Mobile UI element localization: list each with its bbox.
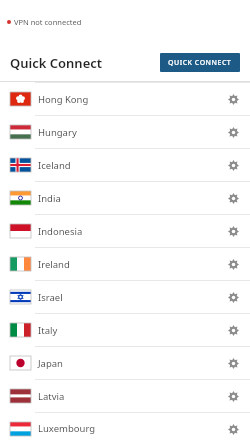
button[interactable]: Hungary <box>0 116 250 148</box>
button[interactable]: Settings for India <box>218 183 248 213</box>
button[interactable]: Israel <box>0 281 250 313</box>
button[interactable]: Settings for Italy <box>218 315 248 345</box>
button[interactable]: Luxembourg <box>0 413 250 444</box>
button[interactable]: QUICK CONNECT <box>160 53 240 72</box>
staticText: India <box>38 192 218 205</box>
button[interactable]: Iceland <box>0 149 250 181</box>
staticText: Italy <box>38 324 218 337</box>
button[interactable]: Japan <box>0 347 250 379</box>
button[interactable]: Hong Kong <box>0 83 250 115</box>
button[interactable]: Latvia <box>0 380 250 412</box>
button[interactable]: Settings for Hungary <box>218 117 248 147</box>
staticText: Quick Connect <box>10 54 103 72</box>
button[interactable]: India <box>0 182 250 214</box>
button[interactable]: Ireland <box>0 248 250 280</box>
staticText: Hong Kong <box>38 93 218 106</box>
button[interactable]: Settings for Indonesia <box>218 216 248 246</box>
button[interactable]: Settings for Hong Kong <box>218 84 248 114</box>
button[interactable]: Settings for Iceland <box>218 150 248 180</box>
button[interactable]: Settings for Luxembourg <box>218 414 248 444</box>
button[interactable]: Settings for Japan <box>218 348 248 378</box>
staticText: Israel <box>38 291 218 304</box>
button[interactable]: Indonesia <box>0 215 250 247</box>
staticText: Latvia <box>38 390 218 403</box>
staticText: Indonesia <box>38 225 218 238</box>
staticText: Japan <box>38 357 218 370</box>
staticText: VPN not connected <box>14 17 82 27</box>
staticText: Iceland <box>38 159 218 172</box>
staticText: Ireland <box>38 258 218 271</box>
button[interactable]: Settings for Israel <box>218 282 248 312</box>
staticText: QUICK CONNECT <box>168 58 232 68</box>
button[interactable]: Settings for Latvia <box>218 381 248 411</box>
button[interactable]: Settings for Ireland <box>218 249 248 279</box>
staticText: Hungary <box>38 126 218 139</box>
staticText: Luxembourg <box>38 422 218 435</box>
button[interactable]: Italy <box>0 314 250 346</box>
